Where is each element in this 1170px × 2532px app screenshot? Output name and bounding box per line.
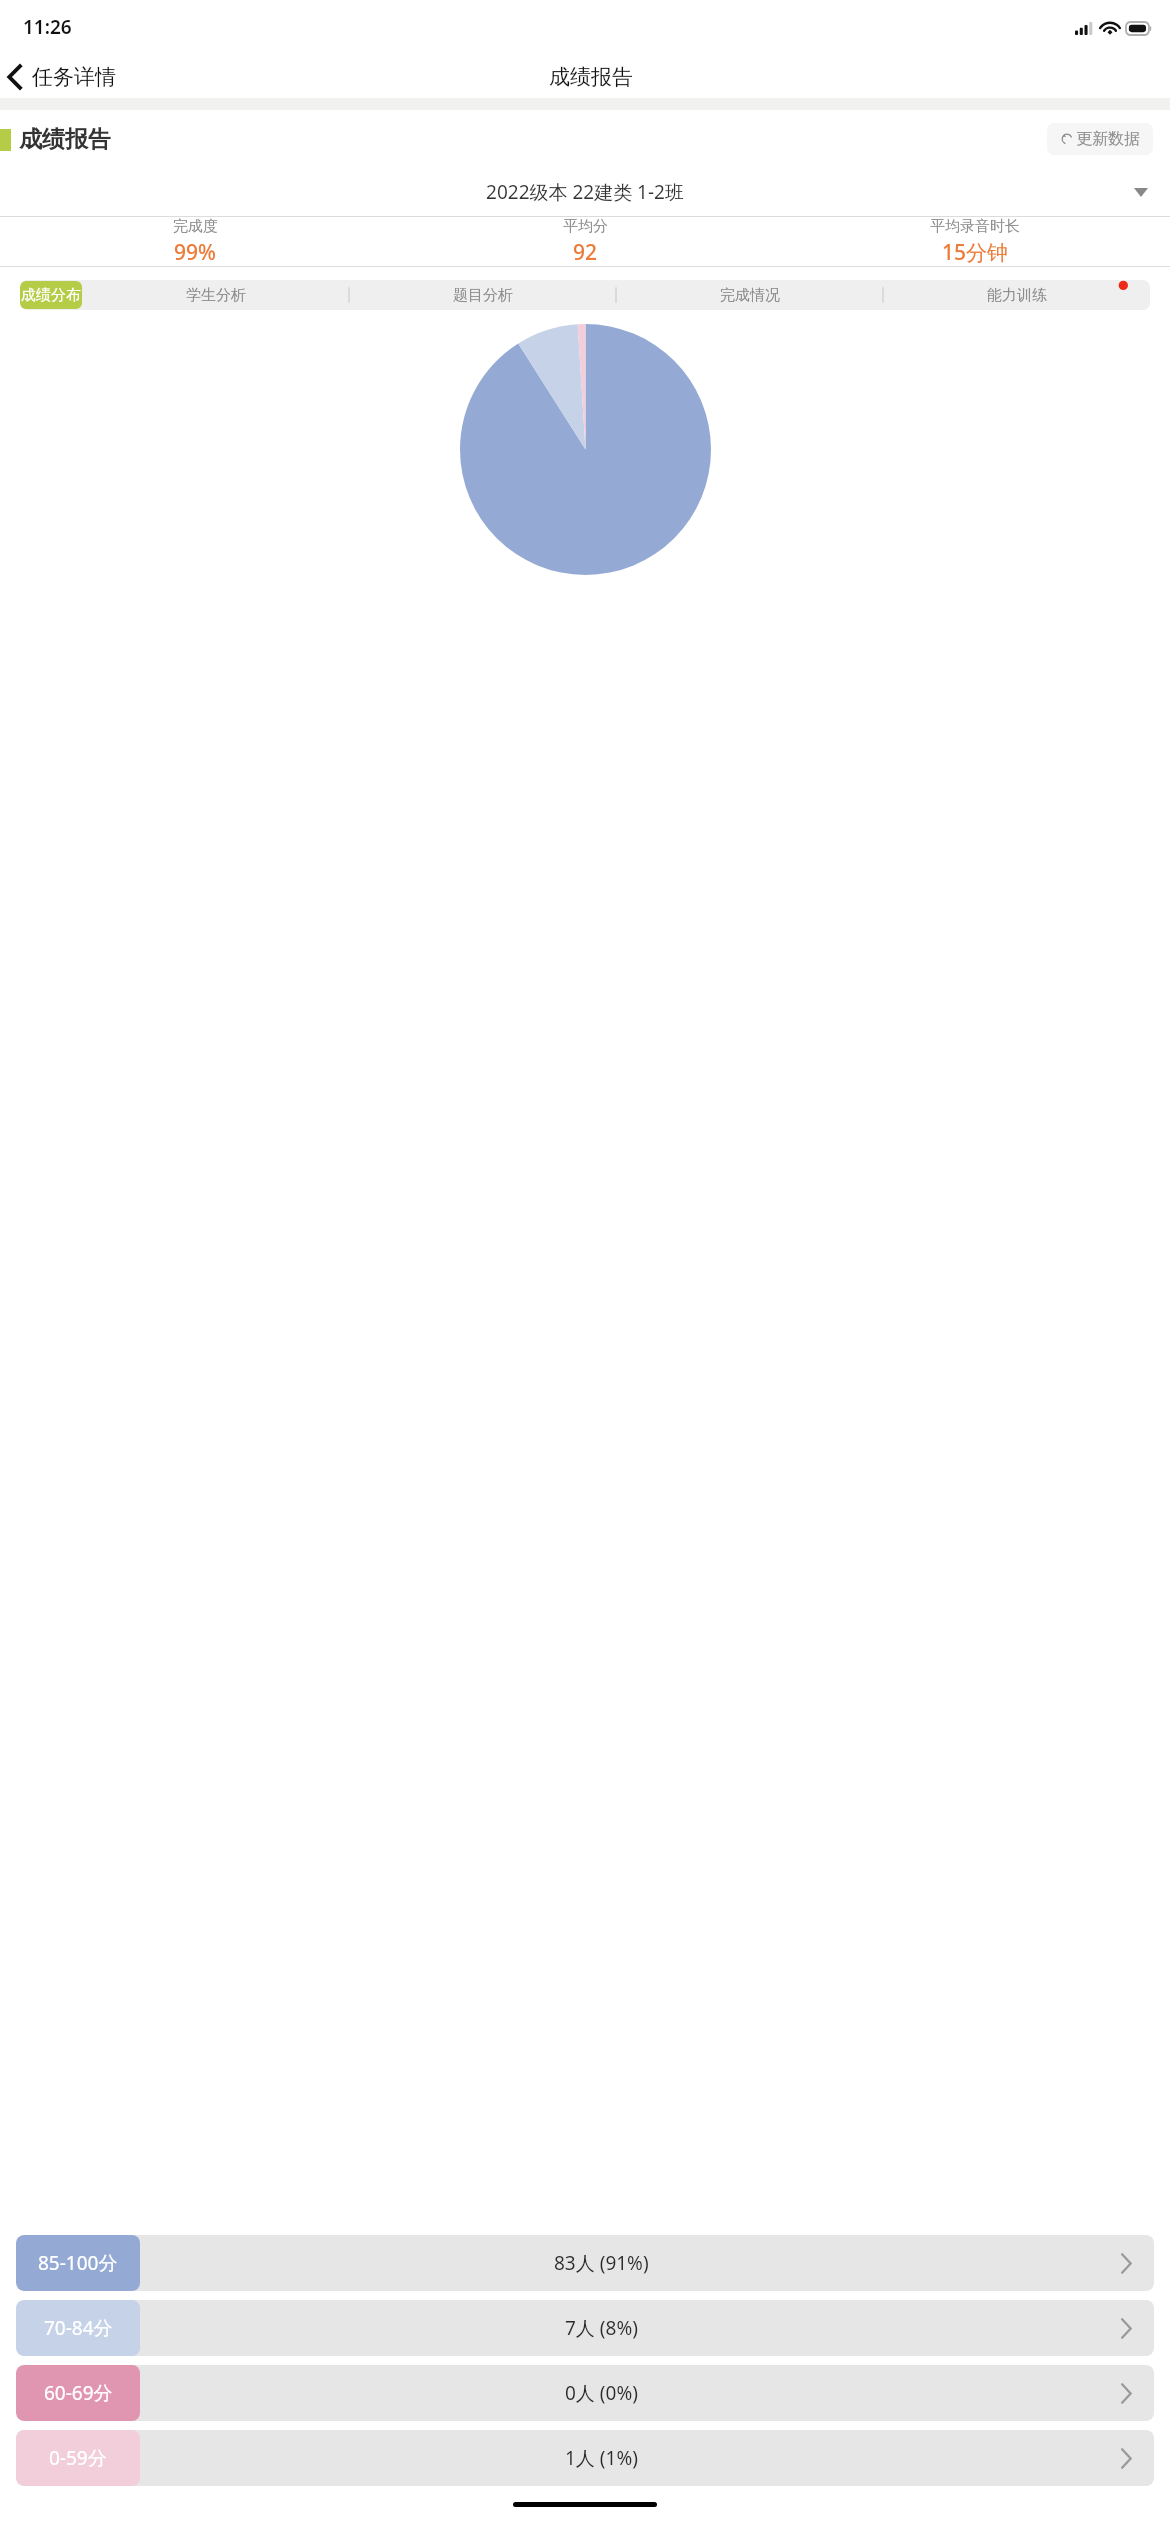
button[interactable]: 2022级本 22建类 1-2班: [0, 168, 1170, 216]
staticText: 能力训练: [987, 286, 1047, 305]
staticText: 11:26: [23, 14, 72, 40]
button[interactable]: 60-69分: [16, 2365, 1154, 2421]
staticText: 1人 (1%): [565, 2445, 638, 2471]
button[interactable]: 成绩分布: [20, 281, 82, 309]
button[interactable]: 70-84分: [16, 2300, 1154, 2356]
staticText: 更新数据: [1076, 129, 1140, 149]
button[interactable]: 题目分析: [349, 280, 616, 310]
staticText: 2022级本 22建类 1-2班: [0, 179, 1170, 205]
staticText: 92: [573, 238, 598, 266]
button[interactable]: 完成情况: [616, 280, 883, 310]
staticText: 成绩报告: [549, 64, 633, 90]
staticText: 任务详情: [32, 64, 116, 90]
staticText: 85-100分: [38, 2250, 118, 2276]
staticText: 99%: [174, 238, 216, 266]
staticText: 题目分析: [453, 286, 513, 305]
staticText: 60-69分: [44, 2380, 113, 2406]
button[interactable]: 能力训练: [883, 280, 1150, 310]
other: Select class: [1134, 188, 1148, 197]
staticText: 平均录音时长: [930, 217, 1020, 236]
staticText: 完成情况: [720, 286, 780, 305]
staticText: 完成度: [173, 217, 218, 236]
staticText: 83人 (91%): [554, 2250, 649, 2276]
staticText: 成绩报告: [19, 125, 111, 154]
button[interactable]: 0-59分: [16, 2430, 1154, 2486]
staticText: 15分钟: [942, 238, 1009, 266]
staticText: 学生分析: [186, 286, 246, 305]
button[interactable]: 更新数据: [1047, 123, 1153, 155]
button[interactable]: 85-100分: [16, 2235, 1154, 2291]
staticText: 0人 (0%): [565, 2380, 638, 2406]
button[interactable]: 学生分析: [82, 280, 349, 310]
staticText: 0-59分: [49, 2445, 107, 2471]
staticText: 7人 (8%): [565, 2315, 638, 2341]
button[interactable]: Back: [0, 60, 128, 94]
staticText: 平均分: [563, 217, 608, 236]
other: Back: [8, 65, 21, 89]
staticText: 70-84分: [44, 2315, 113, 2341]
staticText: 成绩分布: [21, 286, 81, 305]
